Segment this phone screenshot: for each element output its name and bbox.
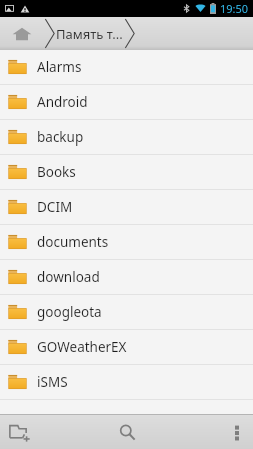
- button[interactable]: Books: [0, 155, 253, 190]
- staticText: iSMS: [37, 373, 68, 391]
- button[interactable]: googleota: [0, 295, 253, 330]
- button[interactable]: Home: [0, 17, 43, 50]
- button[interactable]: DCIM: [0, 190, 253, 225]
- button[interactable]: Android: [0, 85, 253, 120]
- button[interactable]: Search: [85, 415, 169, 449]
- staticText: Память т...: [56, 25, 123, 43]
- staticText: DCIM: [37, 198, 73, 216]
- staticText: Android: [37, 93, 88, 111]
- staticText: 19:50: [220, 1, 249, 16]
- button[interactable]: download: [0, 260, 253, 295]
- staticText: download: [37, 268, 100, 286]
- button[interactable]: documents: [0, 225, 253, 260]
- staticText: googleota: [37, 303, 102, 321]
- staticText: documents: [37, 233, 109, 251]
- staticText: Alarms: [37, 58, 82, 76]
- button[interactable]: GOWeatherEX: [0, 330, 253, 365]
- button[interactable]: More options: [169, 415, 253, 449]
- button[interactable]: backup: [0, 120, 253, 155]
- button[interactable]: Alarms: [0, 50, 253, 85]
- staticText: GOWeatherEX: [37, 338, 127, 356]
- button[interactable]: iSMS: [0, 365, 253, 400]
- button[interactable]: New folder: [0, 415, 85, 449]
- staticText: Books: [37, 163, 76, 181]
- staticText: backup: [37, 128, 84, 146]
- button[interactable]: Память т...: [56, 17, 123, 50]
